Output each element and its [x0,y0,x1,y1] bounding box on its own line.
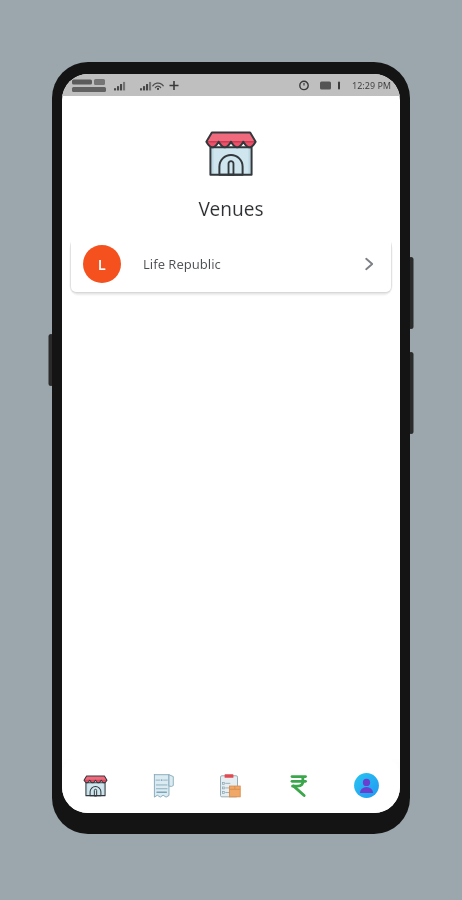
staticText: L [98,255,106,274]
staticText: Life Republic [143,255,359,273]
button[interactable]: L [71,236,391,292]
button[interactable]: Venues [62,757,129,813]
button[interactable]: Invoices [129,757,196,813]
button[interactable]: Profile [332,757,400,813]
button[interactable]: Orders [196,757,264,813]
staticText: Venues [62,196,400,222]
button[interactable]: Payments [264,757,332,813]
staticText: 12:29 PM [352,79,392,91]
